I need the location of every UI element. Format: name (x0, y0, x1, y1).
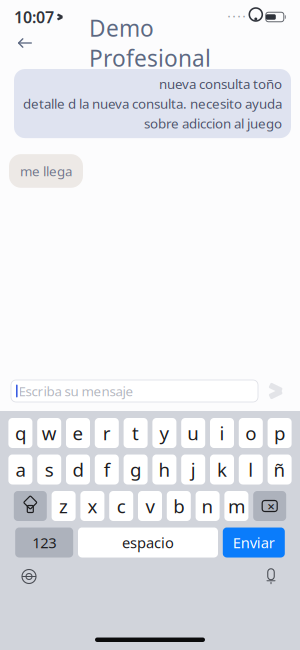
button[interactable]: k (210, 454, 234, 484)
button[interactable]: espacio (78, 527, 218, 557)
staticText: g (130, 457, 141, 482)
staticText: Escriba su mensaje (19, 382, 134, 400)
staticText: q (15, 421, 26, 445)
button[interactable]: t (124, 418, 148, 448)
staticText: Enviar (233, 533, 275, 552)
button[interactable]: m (224, 491, 248, 521)
button[interactable]: Escriba su mensaje (11, 380, 258, 402)
staticText: espacio (122, 533, 174, 552)
staticText: detalle d la nueva consulta. necesito ay… (23, 95, 282, 112)
staticText: i (219, 421, 224, 445)
staticText: l (248, 457, 253, 482)
staticText: 10:07 (14, 6, 54, 28)
button[interactable]: 123 (15, 527, 73, 557)
staticText: s (45, 457, 54, 482)
staticText: t (132, 421, 139, 445)
button[interactable]: v (138, 491, 162, 521)
button[interactable]: b (167, 491, 191, 521)
button[interactable]: Send (265, 379, 289, 403)
staticText: m (228, 494, 245, 518)
staticText: k (217, 457, 227, 482)
button[interactable]: u (181, 418, 205, 448)
staticText: ñ (274, 457, 286, 482)
button[interactable]: s (37, 454, 61, 484)
button[interactable]: z (52, 491, 76, 521)
button[interactable]: Shift (14, 491, 47, 521)
button[interactable]: x (80, 491, 104, 521)
staticText: x (87, 494, 97, 518)
staticText: v (145, 494, 154, 518)
staticText: b (173, 494, 184, 518)
button[interactable]: Change keyboard (14, 563, 44, 589)
staticText: r (103, 421, 111, 445)
button[interactable]: o (239, 418, 263, 448)
staticText: nueva consulta toño (159, 75, 282, 93)
button[interactable]: Dictate (256, 563, 286, 589)
staticText: n (202, 494, 214, 518)
staticText: e (72, 421, 83, 445)
button[interactable]: j (181, 454, 205, 484)
button[interactable]: q (8, 418, 32, 448)
staticText: z (59, 494, 68, 518)
button[interactable]: y (152, 418, 176, 448)
staticText: × (267, 497, 275, 515)
button[interactable]: i (210, 418, 234, 448)
staticText: c (117, 494, 126, 518)
button[interactable]: l (239, 454, 263, 484)
staticText: 123 (32, 533, 56, 552)
button[interactable]: a (8, 454, 32, 484)
staticText: p (274, 421, 285, 445)
button[interactable]: r (95, 418, 119, 448)
staticText: Demo Profesional (89, 13, 211, 73)
staticText: • • • • (228, 13, 246, 21)
staticText: w (42, 421, 57, 445)
staticText: d (72, 457, 83, 482)
staticText: sobre adiccion al juego (144, 114, 282, 132)
button[interactable]: Enviar (223, 527, 285, 557)
button[interactable]: w (37, 418, 61, 448)
button[interactable]: e (66, 418, 90, 448)
button[interactable]: n (196, 491, 220, 521)
button[interactable]: Back (4, 28, 46, 58)
staticText: u (187, 421, 199, 445)
button[interactable]: g (124, 454, 148, 484)
button[interactable]: d (66, 454, 90, 484)
button[interactable]: f (95, 454, 119, 484)
staticText: y (159, 421, 169, 445)
button[interactable]: ñ (268, 454, 292, 484)
staticText: f (104, 457, 110, 482)
staticText: j (191, 457, 196, 482)
button[interactable]: h (152, 454, 176, 484)
staticText: h (158, 457, 170, 482)
staticText: o (245, 421, 256, 445)
button[interactable]: Delete (253, 491, 286, 521)
button[interactable]: c (109, 491, 133, 521)
staticText: me llega (20, 162, 72, 180)
button[interactable]: p (268, 418, 292, 448)
staticText: a (15, 457, 25, 482)
